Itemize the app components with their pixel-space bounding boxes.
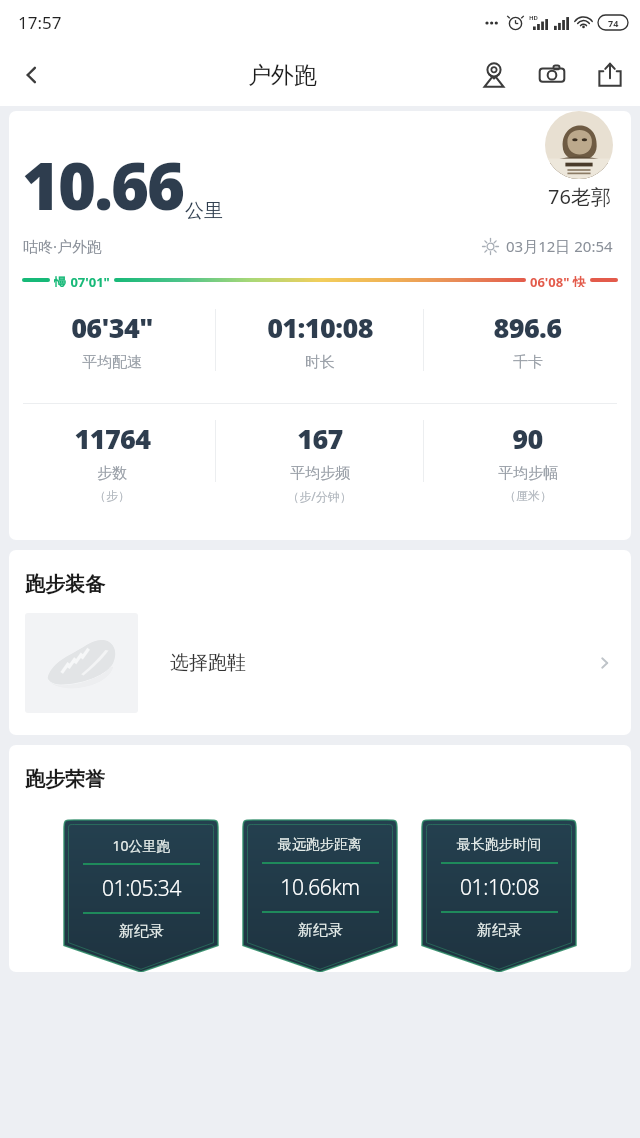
staticText: 最长跑步时间 xyxy=(457,836,541,854)
staticText: 74 xyxy=(608,17,619,29)
staticText: 01:05:34 xyxy=(102,874,181,903)
staticText: 03月12日 20:54 xyxy=(506,236,613,256)
staticText: （厘米） xyxy=(504,488,552,503)
staticText: 90 xyxy=(512,420,543,457)
staticText: 06'08" 快 xyxy=(530,273,586,287)
staticText: 新纪录 xyxy=(119,922,164,941)
button[interactable]: Back xyxy=(6,49,58,101)
staticText: （步） xyxy=(94,488,130,503)
staticText: 167 xyxy=(297,420,343,457)
staticText: 01:10:08 xyxy=(267,309,373,346)
staticText: 公里 xyxy=(185,199,223,223)
staticText: 新纪录 xyxy=(477,921,522,940)
button[interactable]: 最远跑步距离 xyxy=(243,820,397,972)
staticText: 10公里跑 xyxy=(112,836,171,855)
staticText: 最远跑步距离 xyxy=(278,836,362,854)
staticText: 11764 xyxy=(74,420,151,457)
staticText: 76老郭 xyxy=(548,183,611,210)
staticText: 跑步荣誉 xyxy=(25,767,105,792)
staticText: 平均步幅 xyxy=(498,464,558,483)
staticText: HD xyxy=(529,14,538,22)
staticText: 户外跑 xyxy=(248,61,317,90)
staticText: 06'34" xyxy=(71,309,153,346)
button[interactable]: 10公里跑 xyxy=(64,820,218,972)
staticText: 步数 xyxy=(97,464,127,483)
button[interactable]: 76老郭 xyxy=(545,111,613,210)
staticText: 千卡 xyxy=(513,353,543,372)
staticText: 896.6 xyxy=(493,309,562,346)
button[interactable]: Camera xyxy=(528,51,576,99)
staticText: （步/分钟） xyxy=(287,488,352,504)
button[interactable]: Share xyxy=(586,51,634,99)
button[interactable]: 选择跑鞋 xyxy=(9,613,631,713)
staticText: 慢 07'01" xyxy=(54,273,110,287)
staticText: 平均配速 xyxy=(82,353,142,372)
button[interactable]: 最长跑步时间 xyxy=(422,820,576,972)
staticText: 17:57 xyxy=(18,11,62,34)
staticText: 01:10:08 xyxy=(460,873,539,902)
staticText: 新纪录 xyxy=(298,921,343,940)
staticText: 10.66km xyxy=(280,873,360,902)
staticText: 时长 xyxy=(305,353,335,372)
staticText: 10.66 xyxy=(22,141,184,230)
staticText: 平均步频 xyxy=(290,464,350,483)
staticText: 咕咚·户外跑 xyxy=(23,236,103,256)
staticText: 选择跑鞋 xyxy=(170,651,246,675)
staticText: 跑步装备 xyxy=(25,572,105,597)
button[interactable]: Map xyxy=(470,51,518,99)
